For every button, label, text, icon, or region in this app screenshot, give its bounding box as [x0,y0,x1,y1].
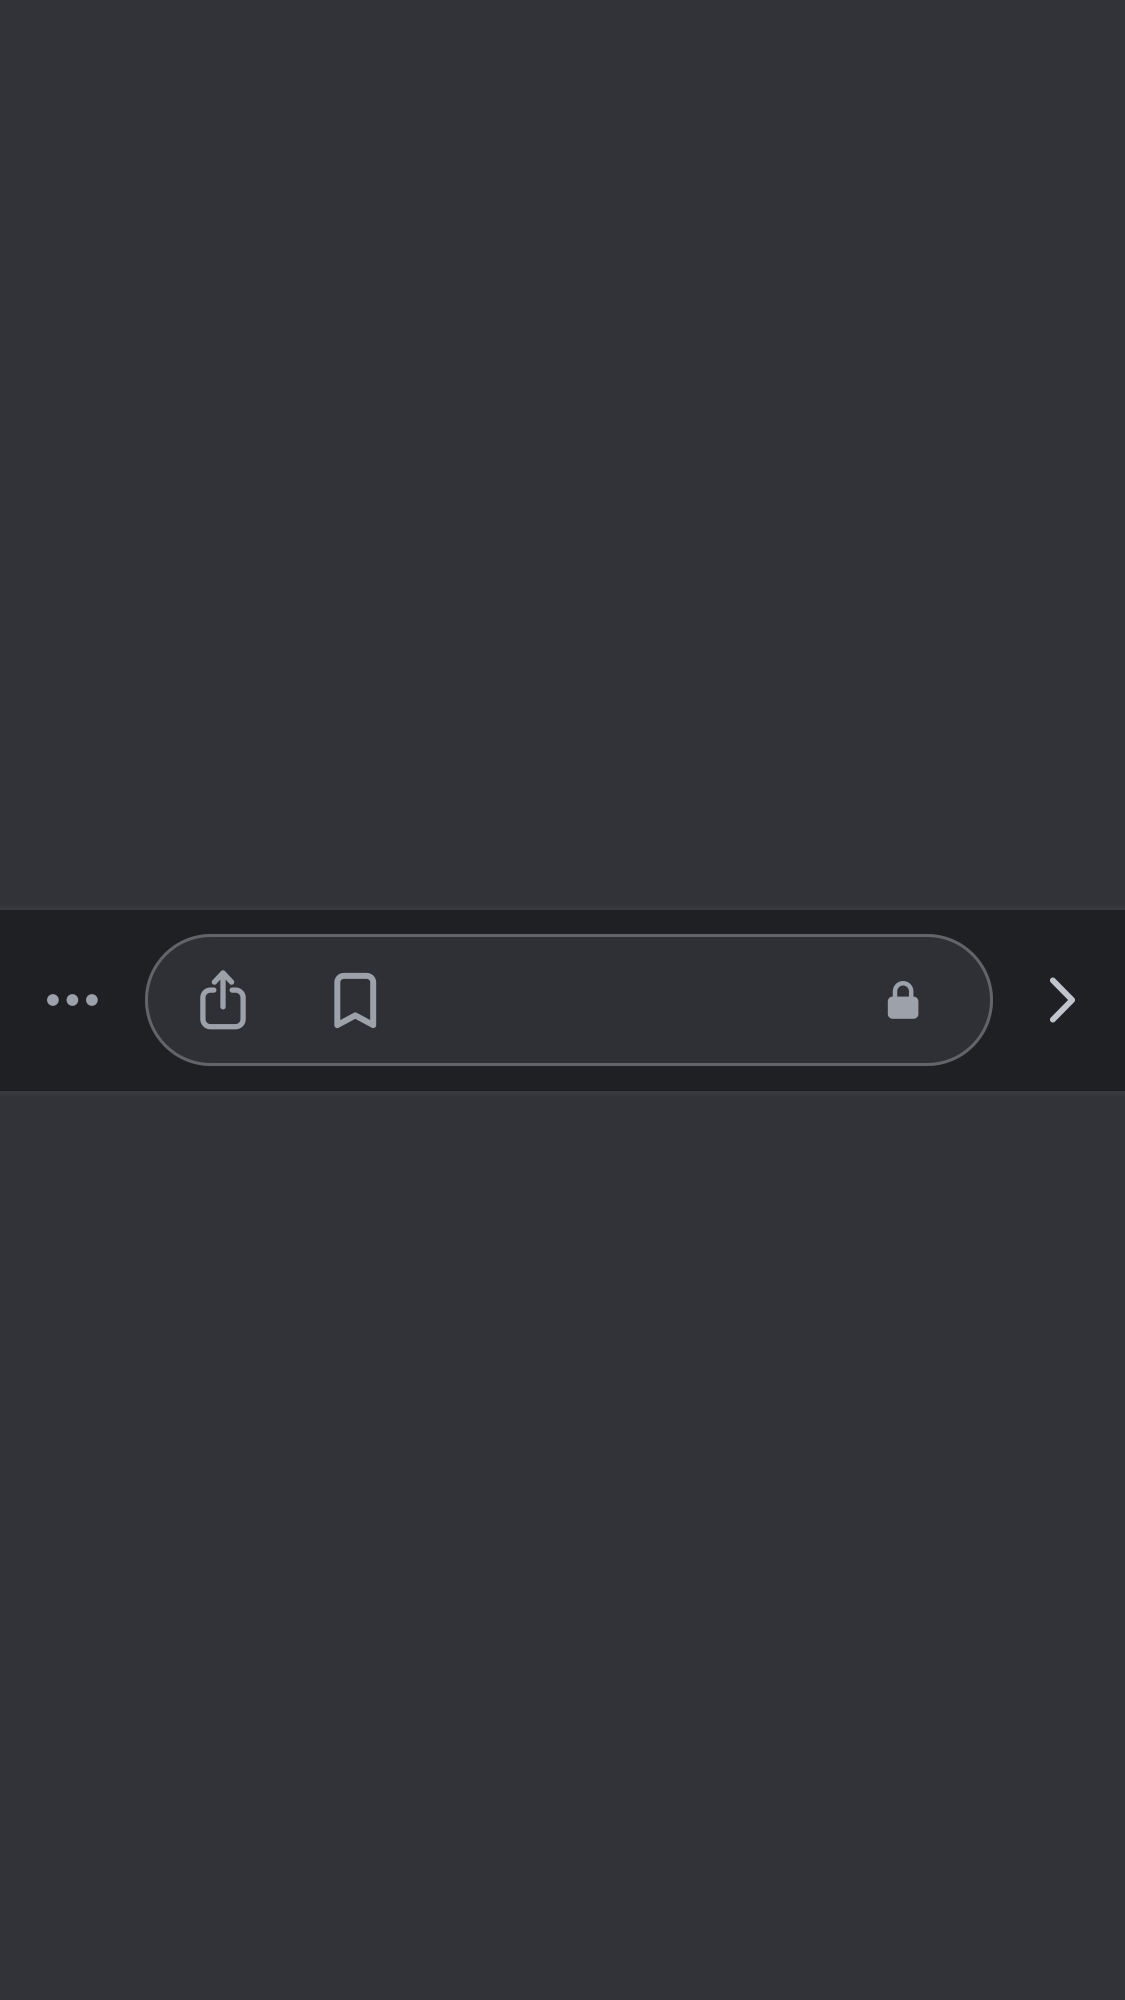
button[interactable]: Forward [1014,952,1110,1048]
button[interactable]: More [24,952,120,1048]
button[interactable]: Share [175,950,271,1046]
button[interactable]: Secure connection [863,960,943,1040]
button[interactable]: Address [145,934,993,1066]
button[interactable]: Bookmarks [307,952,403,1048]
